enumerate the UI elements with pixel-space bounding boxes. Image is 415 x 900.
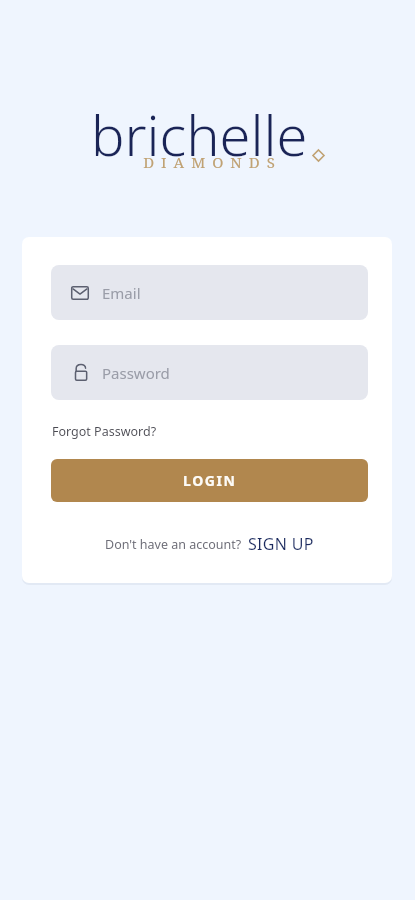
staticText: Password xyxy=(102,363,170,383)
staticText: DIAMONDS xyxy=(143,152,282,172)
button[interactable]: SIGN UP xyxy=(247,531,315,557)
button[interactable]: Forgot Password? xyxy=(51,421,158,442)
button[interactable]: LOGIN xyxy=(51,459,368,502)
staticText: SIGN UP xyxy=(248,533,314,555)
button[interactable]: Password xyxy=(51,345,368,400)
staticText: Email xyxy=(102,283,141,303)
staticText: Don't have an account? xyxy=(105,536,242,553)
staticText: Forgot Password? xyxy=(52,423,157,440)
staticText: LOGIN xyxy=(183,471,237,490)
staticText: brichelle xyxy=(91,96,308,172)
button[interactable]: Email xyxy=(51,265,368,320)
